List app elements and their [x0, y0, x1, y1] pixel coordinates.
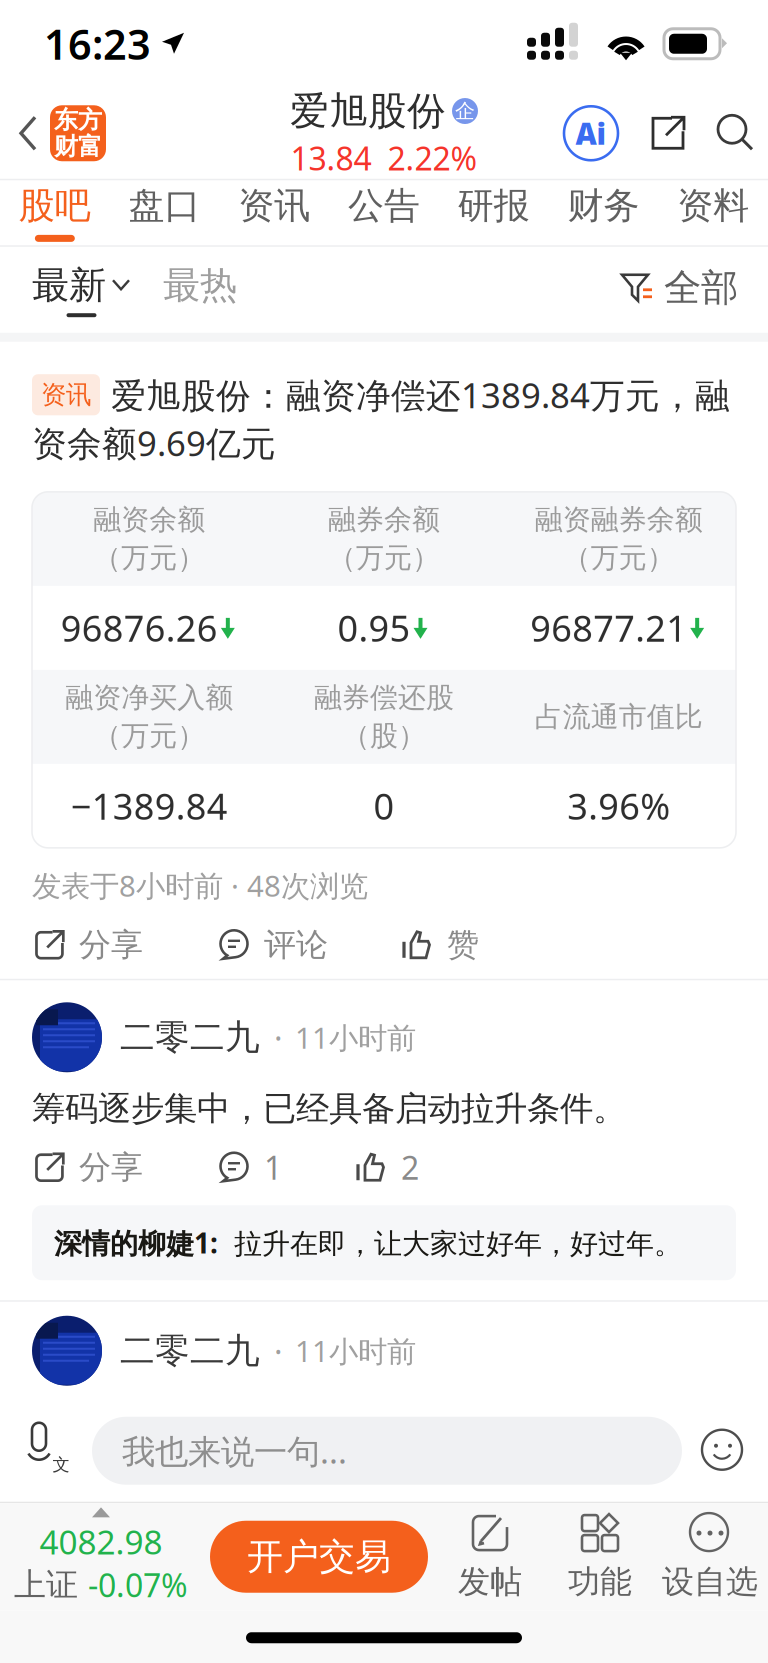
staticText: 二零二九 — [120, 1329, 260, 1372]
staticText: 全部 — [664, 265, 738, 311]
staticText: 融券余额 — [328, 502, 440, 537]
button[interactable]: 全部 — [621, 265, 738, 315]
staticText: · — [274, 1329, 283, 1372]
staticText: 2.22% — [387, 137, 477, 179]
button[interactable]: 最热 — [163, 262, 237, 317]
staticText: 上证 — [14, 1565, 78, 1604]
staticText: 融资余额 — [93, 502, 205, 537]
button[interactable]: 研报 — [439, 184, 549, 242]
staticText: 4082.98 — [39, 1519, 162, 1564]
staticText: （股） — [342, 719, 426, 753]
staticText: 功能 — [568, 1562, 632, 1601]
button[interactable]: 我也来说一句... — [92, 1417, 682, 1485]
button[interactable]: 2 — [354, 1146, 419, 1188]
button[interactable]: 最新 — [32, 262, 137, 317]
button[interactable]: 公告 — [329, 184, 439, 242]
staticText: （万元） — [563, 541, 675, 575]
staticText: 爱旭股份 — [290, 87, 446, 135]
button[interactable]: Back — [0, 114, 50, 152]
staticText: 11小时前 — [295, 1331, 416, 1370]
staticText: 0 — [373, 782, 394, 830]
staticText: 分享 — [79, 1148, 143, 1187]
staticText: 评论 — [264, 925, 328, 964]
button[interactable]: 发帖 — [438, 1512, 542, 1601]
button[interactable]: 设自选 — [658, 1512, 762, 1601]
staticText: 11小时前 — [295, 1018, 416, 1057]
button[interactable]: Emoji — [700, 1428, 746, 1474]
staticText: 我也来说一句... — [122, 1429, 347, 1473]
button[interactable]: 评论 — [217, 925, 328, 964]
staticText: 资余额9.69亿元 — [32, 420, 276, 466]
staticText: （万元） — [328, 541, 440, 575]
staticText: 二零二九 — [120, 1016, 260, 1059]
staticText: 96877.21 — [530, 604, 687, 652]
staticText: −1389.84 — [71, 782, 228, 830]
staticText: 盘口 — [129, 184, 201, 228]
button[interactable]: 开户交易 — [210, 1521, 428, 1593]
button[interactable]: 1 — [217, 1146, 282, 1188]
staticText: 股吧 — [19, 184, 91, 228]
staticText: · — [274, 1016, 283, 1058]
button[interactable]: 盘口 — [110, 184, 219, 242]
staticText: 公告 — [348, 184, 420, 228]
button[interactable]: 股吧 — [0, 184, 110, 242]
staticText: 东方 — [54, 105, 102, 135]
staticText: （万元） — [93, 541, 205, 575]
staticText: 发表于8小时前 · 48次浏览 — [32, 866, 368, 905]
staticText: 设自选 — [662, 1562, 758, 1601]
button[interactable]: 东方财富 — [50, 105, 106, 161]
button[interactable]: 功能 — [548, 1512, 652, 1601]
staticText: 3.96% — [567, 782, 670, 830]
button[interactable]: 分享 — [32, 925, 143, 964]
staticText: 2 — [401, 1146, 419, 1188]
staticText: 0.95 — [337, 604, 410, 652]
staticText: 企 — [455, 99, 475, 123]
staticText: 资讯 — [41, 379, 91, 410]
staticText: Ai — [575, 114, 606, 153]
staticText: 筹码逐步集中，已经具备启动拉升条件。 — [32, 1088, 626, 1129]
staticText: 融资净买入额 — [65, 680, 233, 715]
staticText: 分享 — [79, 925, 143, 964]
staticText: 资讯 — [238, 184, 310, 228]
staticText: 财务 — [567, 184, 639, 228]
staticText: 融资融券余额 — [535, 502, 703, 537]
staticText: 文 — [52, 1454, 69, 1475]
button[interactable]: Voice input — [22, 1426, 68, 1476]
button[interactable]: 分享 — [32, 1148, 143, 1187]
staticText: 深情的柳婕1: 拉升在即，让大家过好年，好过年。 — [54, 1224, 682, 1261]
staticText: 发帖 — [458, 1562, 522, 1601]
button[interactable]: 4082.98 — [12, 1507, 190, 1606]
staticText: 1 — [264, 1146, 282, 1188]
staticText: 16:23 — [44, 16, 151, 71]
staticText: 13.84 — [290, 137, 371, 179]
button[interactable]: Share — [648, 113, 688, 153]
staticText: 爱旭股份：融资净偿还1389.84万元，融 — [111, 372, 730, 418]
staticText: 占流通市值比 — [535, 700, 703, 734]
button[interactable]: Search — [716, 113, 756, 153]
button[interactable]: AI assistant — [564, 106, 618, 160]
button[interactable]: 资料 — [658, 184, 768, 242]
staticText: 96876.26 — [61, 604, 218, 652]
staticText: 融券偿还股 — [314, 680, 454, 715]
staticText: 研报 — [458, 184, 530, 228]
staticText: 最热 — [163, 262, 237, 308]
staticText: 财富 — [54, 132, 102, 161]
button[interactable]: 赞 — [400, 925, 479, 964]
staticText: -0.07% — [88, 1564, 188, 1606]
staticText: 开户交易 — [247, 1535, 391, 1579]
button[interactable]: 财务 — [549, 184, 658, 242]
staticText: 最新 — [32, 262, 106, 308]
staticText: （万元） — [93, 719, 205, 753]
staticText: 资料 — [677, 184, 749, 228]
staticText: 赞 — [447, 925, 479, 964]
button[interactable]: 资讯 — [219, 184, 329, 242]
